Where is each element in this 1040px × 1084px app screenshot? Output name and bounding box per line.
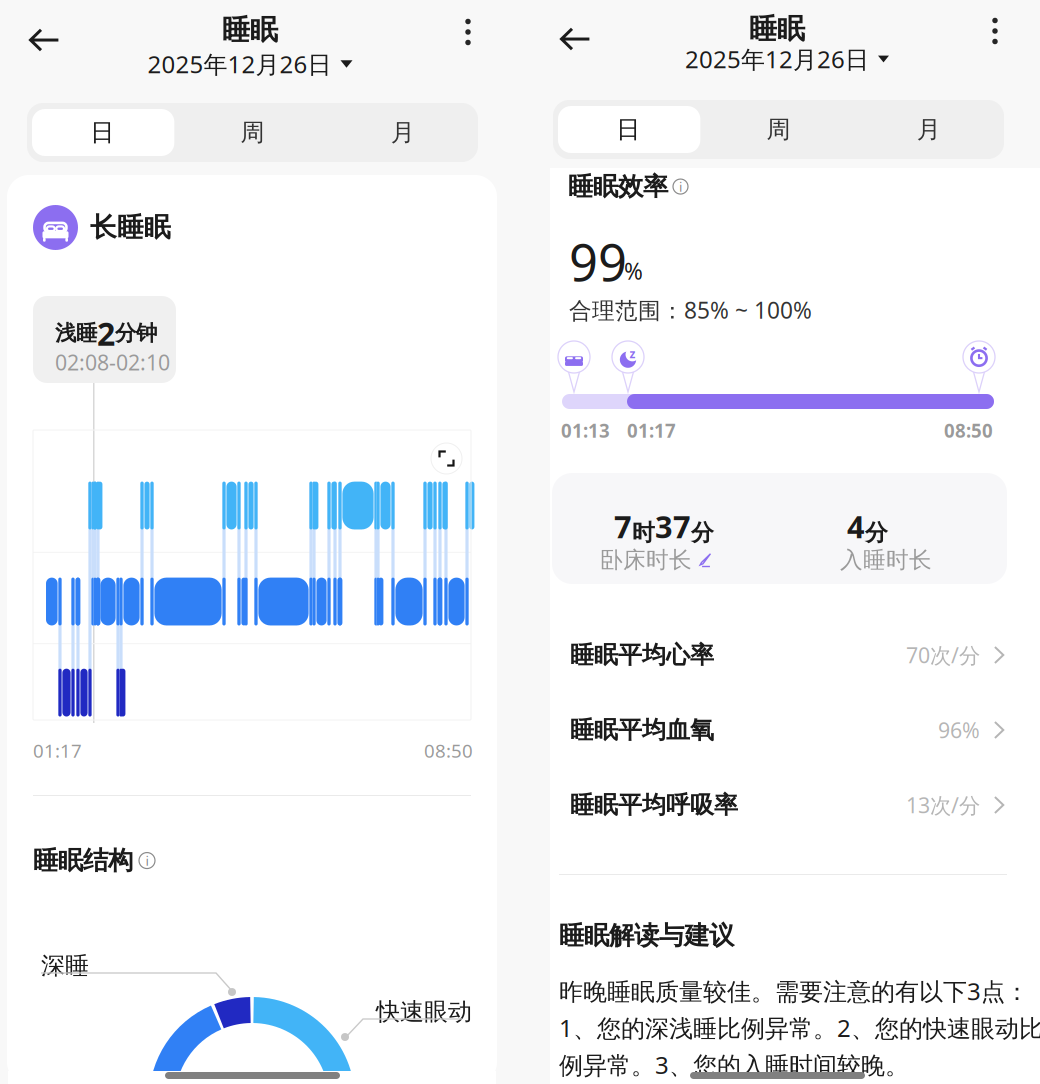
button[interactable]: 月 bbox=[328, 103, 478, 162]
staticText: 13次/分 bbox=[906, 791, 980, 819]
staticText: 睡眠平均呼吸率 bbox=[570, 790, 738, 820]
staticText: 2025年12月26日 bbox=[147, 48, 331, 80]
staticText: 月 bbox=[391, 118, 415, 147]
button[interactable]: 周 bbox=[703, 100, 854, 159]
staticText: 4 bbox=[847, 506, 865, 547]
staticText: 08:50 bbox=[424, 738, 473, 763]
staticText: 02:08-02:10 bbox=[55, 348, 170, 376]
staticText: i bbox=[679, 178, 682, 195]
staticText: 睡眠效率 bbox=[568, 171, 668, 202]
staticText: 日 bbox=[616, 115, 640, 144]
staticText: 浅睡 bbox=[55, 320, 97, 346]
staticText: 月 bbox=[917, 115, 941, 144]
staticText: 睡眠平均心率 bbox=[570, 640, 714, 670]
staticText: 01:13 bbox=[561, 418, 610, 443]
button[interactable]: More options bbox=[982, 16, 1008, 46]
staticText: 长睡眠 bbox=[90, 211, 171, 244]
staticText: 睡眠平均血氧 bbox=[570, 715, 714, 745]
staticText: 37 bbox=[655, 506, 691, 547]
button[interactable]: Back bbox=[554, 18, 596, 60]
staticText: 70次/分 bbox=[906, 641, 980, 669]
staticText: 周 bbox=[766, 115, 790, 144]
button[interactable]: Expand chart bbox=[431, 443, 462, 474]
button[interactable]: Back bbox=[24, 20, 64, 60]
staticText: 99 bbox=[569, 228, 627, 295]
staticText: 08:50 bbox=[944, 418, 993, 443]
staticText: 2025年12月26日 bbox=[685, 43, 869, 75]
button[interactable]: 日 bbox=[27, 103, 177, 162]
staticText: 周 bbox=[240, 118, 264, 147]
staticText: 睡眠 bbox=[749, 12, 805, 46]
staticText: 例异常。3、您的入睡时间较晚。 bbox=[559, 1049, 909, 1081]
staticText: 96% bbox=[938, 716, 980, 744]
staticText: 睡眠 bbox=[222, 13, 278, 47]
button[interactable]: 睡眠平均血氧 bbox=[532, 705, 1020, 755]
staticText: 7 bbox=[614, 506, 632, 547]
staticText: 快速眼动 bbox=[376, 997, 472, 1026]
staticText: 时 bbox=[632, 519, 655, 547]
button[interactable]: 月 bbox=[854, 100, 1004, 159]
staticText: 分 bbox=[691, 519, 714, 547]
staticText: 卧床时长 bbox=[600, 546, 692, 574]
staticText: 2 bbox=[97, 312, 115, 354]
staticText: 分钟 bbox=[115, 320, 157, 346]
button[interactable]: 日 bbox=[553, 100, 703, 159]
staticText: 昨晚睡眠质量较佳。需要注意的有以下3点： bbox=[559, 975, 1029, 1007]
button[interactable]: More options bbox=[455, 17, 481, 47]
staticText: 分 bbox=[865, 519, 888, 547]
staticText: 日 bbox=[90, 118, 114, 147]
staticText: 睡眠解读与建议 bbox=[559, 920, 734, 951]
staticText: z bbox=[629, 346, 635, 361]
button[interactable]: 睡眠平均呼吸率 bbox=[532, 780, 1020, 830]
button[interactable]: 睡眠平均心率 bbox=[532, 630, 1020, 680]
staticText: 睡眠结构 bbox=[33, 845, 133, 876]
staticText: 入睡时长 bbox=[840, 546, 932, 574]
staticText: 合理范围：85% ~ 100% bbox=[569, 295, 812, 325]
staticText: i bbox=[145, 852, 148, 869]
staticText: 深睡 bbox=[41, 951, 89, 980]
button[interactable]: 2025年12月26日 bbox=[140, 48, 360, 80]
staticText: 1、您的深浅睡比例异常。2、您的快速眼动比 bbox=[559, 1012, 1040, 1044]
staticText: % bbox=[624, 256, 643, 286]
button[interactable]: 周 bbox=[177, 103, 328, 162]
staticText: 01:17 bbox=[627, 418, 676, 443]
button[interactable]: 2025年12月26日 bbox=[687, 44, 887, 74]
staticText: 01:17 bbox=[33, 738, 82, 763]
